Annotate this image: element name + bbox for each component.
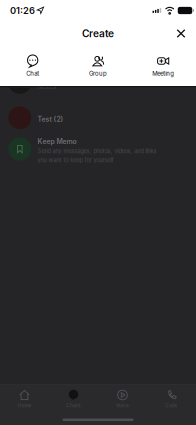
staticText: Calls [165,402,177,408]
button[interactable]: Notes [0,87,196,111]
staticText: Test (2) [37,115,63,123]
staticText: Send any messages, photos, videos, and l… [37,148,156,155]
staticText: Home [17,402,31,408]
button[interactable]: Calls [147,388,196,410]
staticText: Keep Memo [37,137,76,146]
button[interactable]: Group [65,54,131,78]
staticText: Group [89,70,107,77]
staticText: Notes [37,82,56,91]
staticText: Voice [116,402,129,408]
button[interactable]: Chats [49,388,98,410]
button[interactable]: Meeting [131,54,196,78]
staticText: Create [82,27,114,40]
button[interactable]: Chat [0,54,65,78]
staticText: Chats [66,402,81,408]
button[interactable]: Close [170,22,192,44]
staticText: you want to keep for yourself [37,157,113,164]
staticText: Meeting [152,70,174,77]
button[interactable]: Voice [98,388,147,410]
button[interactable]: Home [0,388,49,410]
button[interactable]: Test (2) [0,94,196,125]
staticText: 01:26 [10,5,35,16]
staticText: Chat [26,70,39,77]
button[interactable]: Keep Memo [0,125,196,169]
